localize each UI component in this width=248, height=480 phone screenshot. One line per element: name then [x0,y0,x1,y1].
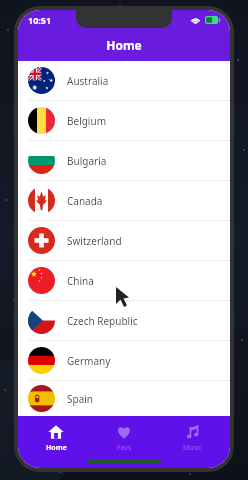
button[interactable]: Switzerland [18,221,230,260]
button[interactable]: Favs [93,422,155,455]
staticText: Spain [67,392,94,406]
button[interactable]: Belgium [18,101,230,140]
staticText: China [67,274,94,288]
staticText: Bulgaria [67,154,107,168]
button[interactable]: Home [25,422,87,455]
staticText: Germany [67,354,111,368]
button[interactable]: Spain [18,381,230,416]
staticText: Home [46,443,67,453]
button[interactable]: Canada [18,181,230,220]
button[interactable]: Germany [18,341,230,380]
staticText: Australia [67,74,109,88]
staticText: Belgium [67,114,106,128]
button[interactable]: Czech Republic [18,301,230,340]
staticText: Music [183,443,203,453]
staticText: Canada [67,194,103,208]
button[interactable]: China [18,261,230,300]
staticText: Home [106,37,142,53]
staticText: Switzerland [67,234,122,248]
button[interactable]: Australia [18,61,230,100]
staticText: Favs [117,443,132,453]
button[interactable]: Bulgaria [18,141,230,180]
staticText: 10:51 [28,14,52,26]
staticText: Czech Republic [67,314,138,328]
button[interactable]: Music [162,422,224,455]
